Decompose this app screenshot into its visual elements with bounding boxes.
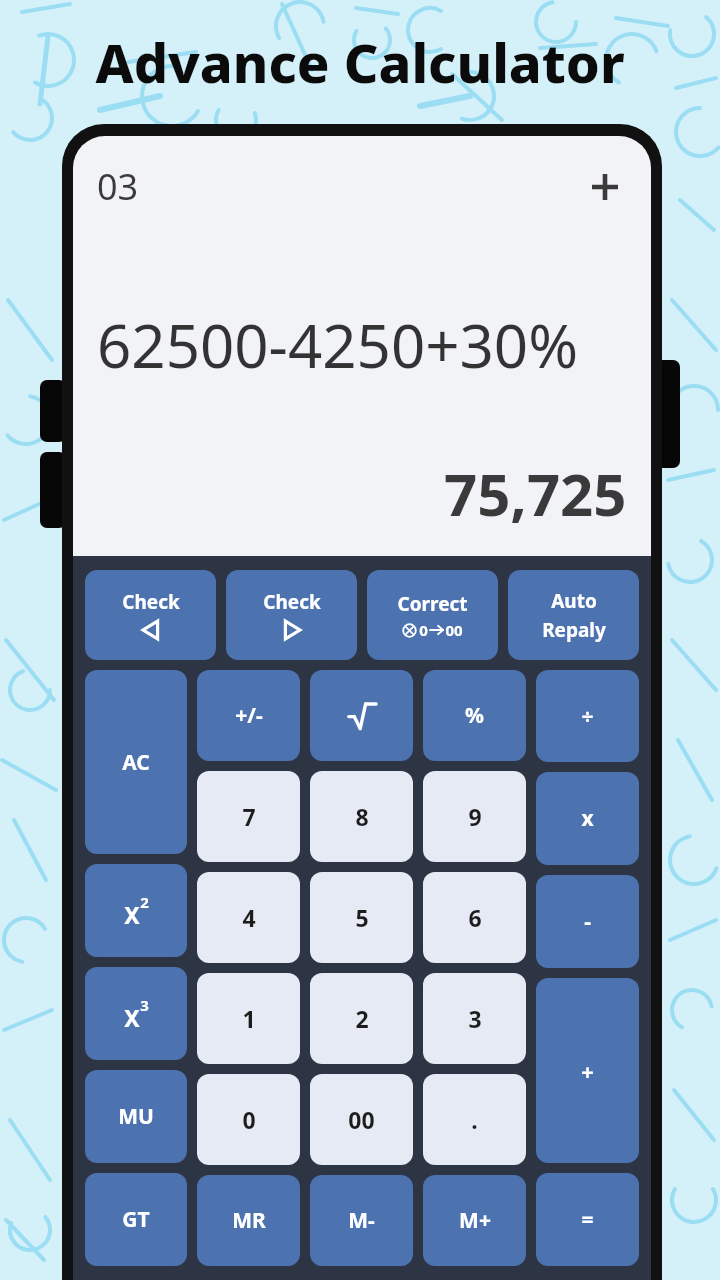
button[interactable]: GT xyxy=(85,1173,187,1266)
staticText: 7 xyxy=(242,801,256,832)
staticText: AC xyxy=(122,748,150,777)
staticText: 5 xyxy=(355,902,369,933)
button[interactable]: MR xyxy=(197,1175,300,1266)
staticText: x xyxy=(581,804,594,833)
staticText: 9 xyxy=(468,801,482,832)
button[interactable]: MU xyxy=(85,1070,187,1163)
button[interactable]: + xyxy=(536,978,639,1163)
button[interactable]: Square root xyxy=(310,670,413,761)
staticText: + xyxy=(581,1056,594,1086)
button[interactable]: - xyxy=(536,875,639,968)
staticText: Repaly xyxy=(542,617,606,643)
staticText: ÷ xyxy=(581,702,594,731)
button[interactable]: 0 xyxy=(197,1074,300,1165)
staticText: Check xyxy=(263,589,321,615)
staticText: X xyxy=(124,1002,140,1033)
staticText: 4 xyxy=(242,902,256,933)
staticText: Auto xyxy=(551,588,597,614)
button[interactable]: 8 xyxy=(310,771,413,862)
staticText: % xyxy=(465,701,484,730)
staticText: M- xyxy=(348,1206,375,1235)
button[interactable]: Check previous xyxy=(85,570,216,660)
button[interactable]: M+ xyxy=(423,1175,526,1266)
staticText: 62500-4250+30% xyxy=(97,304,579,386)
button[interactable]: Add memory xyxy=(583,165,627,209)
staticText: . xyxy=(471,1104,478,1135)
staticText: 0 xyxy=(419,620,428,640)
staticText: 75,725 xyxy=(444,454,627,533)
button[interactable]: 4 xyxy=(197,872,300,963)
staticText: - xyxy=(584,907,591,936)
button[interactable]: 5 xyxy=(310,872,413,963)
staticText: GT xyxy=(122,1205,150,1234)
button[interactable]: M- xyxy=(310,1175,413,1266)
button[interactable]: X to the power 2 xyxy=(85,864,187,957)
button[interactable]: 1 xyxy=(197,973,300,1064)
button[interactable]: 7 xyxy=(197,771,300,862)
button[interactable]: ÷ xyxy=(536,670,639,762)
button[interactable]: Correct xyxy=(367,570,498,660)
button[interactable]: = xyxy=(536,1173,639,1266)
staticText: 3 xyxy=(468,1003,482,1034)
button[interactable]: 00 xyxy=(310,1074,413,1165)
button[interactable]: Check next xyxy=(226,570,357,660)
staticText: 2 xyxy=(355,1003,369,1034)
staticText: M+ xyxy=(459,1206,491,1235)
staticText: 00 xyxy=(348,1104,375,1135)
button[interactable]: AC xyxy=(85,670,187,854)
staticText: Check xyxy=(122,589,180,615)
button[interactable]: 9 xyxy=(423,771,526,862)
staticText: Correct xyxy=(397,591,468,617)
staticText: +/- xyxy=(235,701,263,730)
button[interactable]: . xyxy=(423,1074,526,1165)
staticText: MR xyxy=(232,1206,266,1235)
staticText: 6 xyxy=(468,902,482,933)
staticText: 03 xyxy=(97,162,139,211)
staticText: 00 xyxy=(445,620,463,640)
button[interactable]: x xyxy=(536,772,639,865)
staticText: 2 xyxy=(140,892,149,912)
button[interactable]: X to the power 3 xyxy=(85,967,187,1060)
staticText: X xyxy=(124,899,140,930)
button[interactable]: % xyxy=(423,670,526,761)
staticText: Advance Calculator xyxy=(95,25,625,99)
button[interactable]: Auto xyxy=(508,570,639,660)
button[interactable]: 6 xyxy=(423,872,526,963)
staticText: 0 xyxy=(242,1104,256,1135)
button[interactable]: 3 xyxy=(423,973,526,1064)
button[interactable]: +/- xyxy=(197,670,300,761)
staticText: 3 xyxy=(140,995,149,1015)
staticText: MU xyxy=(118,1102,154,1131)
button[interactable]: 2 xyxy=(310,973,413,1064)
staticText: = xyxy=(581,1205,594,1234)
staticText: 1 xyxy=(242,1003,256,1034)
staticText: 8 xyxy=(355,801,369,832)
